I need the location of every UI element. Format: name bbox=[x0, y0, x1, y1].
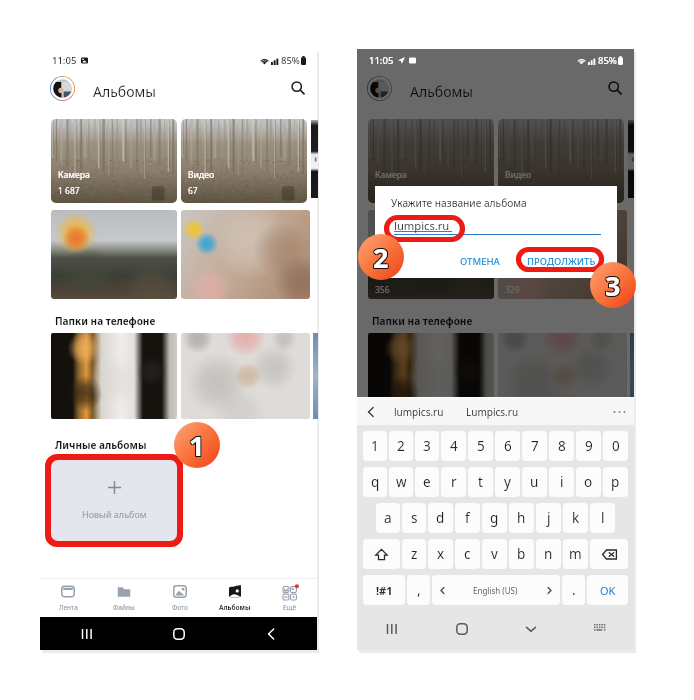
button[interactable]: n bbox=[536, 539, 561, 569]
button[interactable] bbox=[368, 333, 494, 397]
button[interactable]: Фото bbox=[152, 579, 207, 617]
staticText: 7 bbox=[531, 437, 539, 455]
button[interactable]: Profile bbox=[50, 76, 75, 101]
button[interactable]: Keyboard layout bbox=[565, 607, 634, 650]
staticText: Альбомы bbox=[219, 603, 251, 612]
button[interactable]: m bbox=[563, 539, 588, 569]
staticText: Новый альбом bbox=[82, 508, 147, 520]
button[interactable]: Recents bbox=[40, 617, 133, 650]
button[interactable] bbox=[51, 210, 177, 299]
button[interactable]: Shift bbox=[363, 539, 400, 569]
staticText: Личные альбомы bbox=[55, 438, 147, 452]
button[interactable]: OK bbox=[587, 575, 628, 605]
button[interactable]: Видео bbox=[498, 119, 624, 203]
staticText: 1 bbox=[190, 426, 206, 463]
staticText: 1 bbox=[189, 428, 205, 465]
staticText: 3 bbox=[606, 267, 622, 304]
staticText: d bbox=[436, 509, 445, 527]
button[interactable]: Search bbox=[285, 75, 311, 101]
button[interactable]: Home bbox=[133, 617, 225, 650]
button[interactable]: 1 bbox=[363, 431, 387, 461]
button[interactable]: ПРОДОЛЖИТЬ bbox=[519, 250, 604, 272]
button[interactable] bbox=[498, 210, 627, 299]
button[interactable]: 5 bbox=[468, 431, 493, 461]
button[interactable]: i bbox=[549, 467, 574, 497]
button[interactable]: o bbox=[576, 467, 601, 497]
button[interactable]: Камера bbox=[368, 119, 494, 203]
button[interactable]: a bbox=[376, 503, 400, 533]
button[interactable]: English (US) bbox=[432, 575, 560, 605]
button[interactable]: !#1 bbox=[363, 575, 405, 605]
button[interactable]: u bbox=[522, 467, 547, 497]
staticText: t bbox=[478, 473, 483, 491]
button[interactable]: Backspace bbox=[590, 539, 628, 569]
button[interactable] bbox=[498, 333, 627, 397]
button[interactable] bbox=[368, 210, 494, 299]
staticText: 1 bbox=[371, 437, 379, 455]
button[interactable]: 0 bbox=[603, 431, 628, 461]
button[interactable]: 2 bbox=[389, 431, 413, 461]
staticText: 3 bbox=[605, 268, 621, 305]
button[interactable]: j bbox=[536, 503, 561, 533]
button[interactable]: t bbox=[468, 467, 493, 497]
staticText: f bbox=[465, 509, 470, 527]
button[interactable] bbox=[181, 210, 310, 299]
staticText: Укажите название альбома bbox=[391, 196, 527, 210]
button[interactable]: ОТМЕНА bbox=[450, 250, 510, 272]
staticText: m bbox=[569, 545, 582, 563]
button[interactable]: Profile bbox=[367, 76, 392, 101]
staticText: y bbox=[504, 473, 511, 491]
button[interactable]: w bbox=[389, 467, 413, 497]
button[interactable]: x bbox=[428, 539, 453, 569]
button[interactable]: f bbox=[455, 503, 480, 533]
button[interactable] bbox=[181, 333, 310, 419]
button[interactable]: Back bbox=[225, 617, 317, 650]
button[interactable]: d bbox=[428, 503, 453, 533]
staticText: 9 bbox=[585, 437, 593, 455]
button[interactable]: h bbox=[509, 503, 534, 533]
button[interactable]: 6 bbox=[495, 431, 520, 461]
button[interactable]: c bbox=[455, 539, 480, 569]
staticText: 356 bbox=[375, 284, 390, 296]
button[interactable]: 8 bbox=[549, 431, 574, 461]
button[interactable]: g bbox=[482, 503, 507, 533]
staticText: 2 bbox=[372, 240, 388, 277]
button[interactable]: Файлы bbox=[96, 579, 152, 617]
button[interactable]: Альбомы bbox=[207, 579, 262, 617]
button[interactable]: e bbox=[415, 467, 439, 497]
staticText: Альбомы bbox=[93, 82, 156, 101]
staticText: 11:05 bbox=[52, 54, 77, 67]
staticText: 3 bbox=[604, 266, 620, 303]
staticText: e bbox=[423, 473, 431, 491]
button[interactable]: Камера bbox=[51, 119, 177, 203]
button[interactable]: y bbox=[495, 467, 520, 497]
button[interactable]: b bbox=[509, 539, 534, 569]
button[interactable]: Recents bbox=[357, 607, 427, 650]
button[interactable]: k bbox=[563, 503, 588, 533]
button[interactable]: v bbox=[482, 539, 507, 569]
staticText: 2 bbox=[373, 238, 389, 275]
button[interactable]: l bbox=[590, 503, 615, 533]
staticText: ПРОДОЛЖИТЬ bbox=[527, 255, 596, 268]
button[interactable]: s bbox=[402, 503, 426, 533]
button[interactable]: Ещё bbox=[262, 579, 317, 617]
button[interactable]: p bbox=[603, 467, 628, 497]
button[interactable]: 7 bbox=[522, 431, 547, 461]
button[interactable]: q bbox=[363, 467, 387, 497]
button[interactable]: Search bbox=[602, 75, 628, 101]
button[interactable]: z bbox=[402, 539, 426, 569]
button[interactable]: 4 bbox=[441, 431, 466, 461]
button[interactable]: r bbox=[441, 467, 466, 497]
button[interactable] bbox=[51, 333, 177, 419]
staticText: 3 bbox=[606, 268, 622, 305]
button[interactable]: Back bbox=[366, 407, 376, 417]
button[interactable]: Новый альбом bbox=[51, 460, 177, 541]
button[interactable]: . bbox=[562, 575, 585, 605]
button[interactable]: , bbox=[407, 575, 430, 605]
button[interactable]: 9 bbox=[576, 431, 601, 461]
button[interactable]: 3 bbox=[415, 431, 439, 461]
button[interactable]: Home bbox=[427, 607, 496, 650]
button[interactable]: Видео bbox=[181, 119, 307, 203]
button[interactable]: Hide keyboard bbox=[496, 607, 565, 650]
button[interactable]: Лента bbox=[40, 579, 96, 617]
